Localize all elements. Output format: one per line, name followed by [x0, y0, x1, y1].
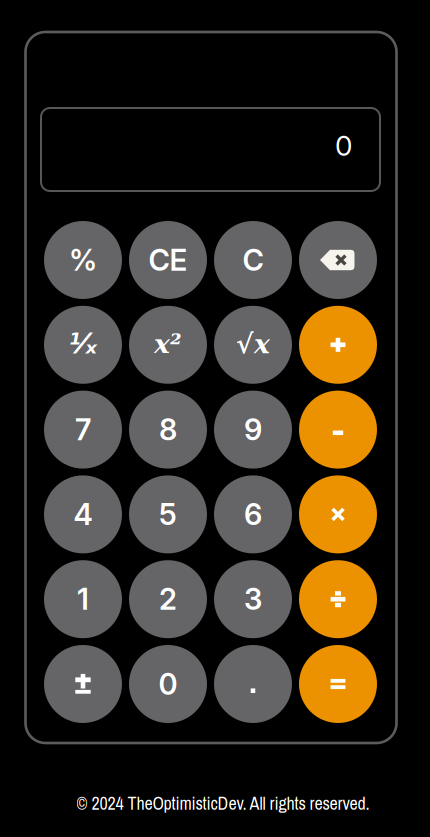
button[interactable]: 3	[214, 560, 292, 638]
staticText: ¹⁄ₓ	[68, 327, 97, 360]
button[interactable]: 7	[44, 391, 122, 469]
button[interactable]: 5	[129, 475, 207, 553]
staticText: 1	[77, 581, 89, 617]
button[interactable]: 9	[214, 391, 292, 469]
staticText: 7	[75, 412, 91, 447]
button[interactable]: Add	[299, 306, 377, 384]
staticText: 8	[159, 412, 177, 447]
staticText: x²	[154, 328, 182, 359]
button[interactable]: x²	[129, 306, 207, 384]
staticText: C	[242, 242, 263, 278]
staticText: √x	[236, 328, 270, 359]
staticText: CE	[148, 242, 187, 278]
staticText: 0	[158, 666, 177, 702]
button[interactable]: 1	[44, 560, 122, 638]
staticText: © 2024 TheOptimisticDev. All rights rese…	[76, 791, 369, 815]
staticText: 0	[335, 129, 352, 162]
button[interactable]: 4	[44, 475, 122, 553]
button[interactable]: C	[214, 221, 292, 299]
staticText: 4	[73, 497, 92, 532]
button[interactable]: Subtract	[299, 391, 377, 469]
button[interactable]: Decimal point	[214, 645, 292, 723]
button[interactable]: 8	[129, 391, 207, 469]
button[interactable]: √x	[214, 306, 292, 384]
button[interactable]: 0	[129, 645, 207, 723]
button[interactable]: ¹⁄ₓ	[44, 306, 122, 384]
button[interactable]: Equals	[299, 645, 377, 723]
button[interactable]: Backspace	[299, 221, 377, 299]
staticText: 9	[244, 412, 262, 447]
button[interactable]: Multiply	[299, 475, 377, 553]
staticText: 5	[159, 497, 177, 532]
staticText: %	[69, 242, 97, 278]
button[interactable]: 6	[214, 475, 292, 553]
staticText: 6	[244, 497, 262, 532]
button[interactable]: Divide	[299, 560, 377, 638]
staticText: 3	[244, 581, 262, 617]
staticText: 2	[159, 581, 177, 617]
button[interactable]: Plus or minus	[44, 645, 122, 723]
button[interactable]: 2	[129, 560, 207, 638]
button[interactable]: %	[44, 221, 122, 299]
button[interactable]: CE	[129, 221, 207, 299]
